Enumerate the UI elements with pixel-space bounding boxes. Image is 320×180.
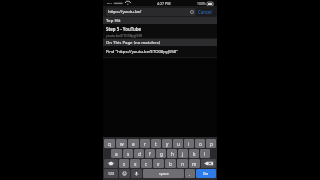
- button[interactable]: Cancel: [196, 8, 214, 16]
- button[interactable]: x: [130, 159, 140, 168]
- button[interactable]: Emoji: [119, 169, 130, 178]
- button[interactable]: k: [189, 149, 199, 158]
- staticText: youtu.be/ETO08pyJ0S8: [106, 33, 143, 38]
- staticText: 123: [108, 171, 114, 176]
- button[interactable]: i: [184, 139, 194, 148]
- button[interactable]: https://youtu.be/ETO08pyJ0S8: [106, 8, 196, 16]
- button[interactable]: space: [143, 169, 184, 178]
- other: Clear text: [190, 10, 194, 14]
- staticText: x: [134, 161, 137, 167]
- staticText: On This Page (no matches): [106, 40, 161, 46]
- staticText: h: [171, 151, 174, 157]
- staticText: c: [145, 161, 148, 167]
- button[interactable]: d: [134, 149, 144, 158]
- button[interactable]: n: [177, 159, 188, 168]
- staticText: 4:27 PM: [157, 1, 171, 6]
- staticText: space: [159, 171, 169, 176]
- staticText: .: [189, 171, 191, 177]
- button[interactable]: l: [200, 149, 210, 158]
- staticText: Step 5 - YouTube: [106, 26, 142, 32]
- button[interactable]: a: [111, 149, 122, 158]
- button[interactable]: h: [167, 149, 177, 158]
- button[interactable]: Backspace: [201, 159, 216, 168]
- staticText: Cancel: [198, 9, 212, 15]
- staticText: w: [120, 141, 124, 147]
- staticText: z: [123, 161, 126, 167]
- button[interactable]: m: [189, 159, 200, 168]
- button[interactable]: Find "https://youtu.be/ETO08pyJ0S8": [103, 46, 217, 57]
- staticText: i: [188, 141, 190, 147]
- button[interactable]: s: [123, 149, 133, 158]
- staticText: Go: [203, 171, 209, 176]
- button[interactable]: e: [128, 139, 139, 148]
- staticText: n: [181, 161, 184, 167]
- button[interactable]: q: [104, 139, 115, 148]
- button[interactable]: t: [151, 139, 161, 148]
- button[interactable]: 123: [104, 169, 118, 178]
- staticText: p: [210, 141, 213, 147]
- staticText: s: [127, 151, 130, 157]
- button[interactable]: r: [140, 139, 150, 148]
- button[interactable]: y: [162, 139, 172, 148]
- button[interactable]: f: [145, 149, 155, 158]
- staticText: a: [115, 151, 118, 157]
- button[interactable]: .: [185, 169, 195, 178]
- staticText: y: [166, 141, 169, 147]
- button[interactable]: Step 5 - YouTube: [103, 24, 217, 38]
- button[interactable]: u: [173, 139, 183, 148]
- staticText: k: [193, 151, 196, 157]
- staticText: 100%: [197, 1, 206, 6]
- button[interactable]: Dictation: [131, 169, 142, 178]
- button[interactable]: z: [119, 159, 129, 168]
- staticText: f: [149, 151, 151, 157]
- staticText: o: [199, 141, 202, 147]
- staticText: https://youtu.be/ETO08pyJ0S8: [108, 9, 149, 15]
- staticText: g: [160, 151, 163, 157]
- staticText: u: [177, 141, 180, 147]
- staticText: q: [108, 141, 111, 147]
- button[interactable]: w: [116, 139, 127, 148]
- button[interactable]: Go: [196, 169, 216, 178]
- staticText: j: [182, 151, 184, 157]
- button[interactable]: Shift: [104, 159, 118, 168]
- staticText: m: [192, 161, 197, 167]
- button[interactable]: j: [178, 149, 188, 158]
- staticText: e: [132, 141, 135, 147]
- staticText: l: [204, 151, 206, 157]
- staticText: d: [138, 151, 141, 157]
- staticText: v: [157, 161, 160, 167]
- button[interactable]: p: [206, 139, 216, 148]
- button[interactable]: c: [141, 159, 152, 168]
- button[interactable]: v: [153, 159, 164, 168]
- button[interactable]: b: [165, 159, 176, 168]
- staticText: Find "https://youtu.be/ETO08pyJ0S8": [106, 49, 178, 55]
- staticText: Top Hit: [106, 18, 121, 24]
- staticText: t: [155, 141, 157, 147]
- staticText: r: [144, 141, 146, 147]
- button[interactable]: o: [195, 139, 205, 148]
- staticText: b: [169, 161, 172, 167]
- button[interactable]: g: [156, 149, 166, 158]
